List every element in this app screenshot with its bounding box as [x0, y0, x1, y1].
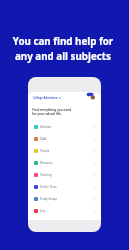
- staticText: College Admission: [33, 96, 58, 100]
- button[interactable]: Study Group: [28, 193, 101, 205]
- button[interactable]: Q&A: [28, 133, 101, 145]
- button[interactable]: Online Class: [28, 181, 101, 193]
- button[interactable]: College Admission: [33, 96, 61, 100]
- button[interactable]: Tutoring: [28, 169, 101, 181]
- staticText: Find everything you need for your school…: [32, 108, 72, 116]
- staticText: People: [40, 149, 50, 153]
- staticText: Resource: [40, 161, 53, 165]
- staticText: Solution: [40, 125, 52, 129]
- button[interactable]: Solution: [28, 121, 101, 133]
- staticText: Online Class: [40, 185, 57, 189]
- button[interactable]: Live: [28, 205, 101, 217]
- button[interactable]: People: [28, 145, 101, 157]
- button[interactable]: Messages: [86, 91, 97, 102]
- button[interactable]: Resource: [28, 157, 101, 169]
- staticText: Study Group: [40, 197, 57, 201]
- staticText: Live: [40, 209, 46, 213]
- staticText: Tutoring: [40, 173, 52, 177]
- staticText: You can find help for any and all subjec…: [2, 35, 124, 63]
- staticText: Q&A: [40, 137, 47, 141]
